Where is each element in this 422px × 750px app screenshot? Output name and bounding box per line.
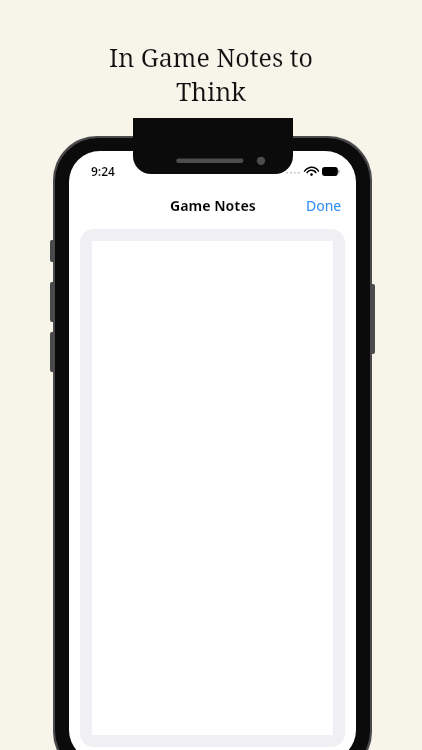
- staticText: Done: [306, 196, 342, 215]
- button[interactable]: [80, 229, 345, 747]
- button[interactable]: Done: [292, 188, 356, 223]
- staticText: Game Notes: [170, 196, 256, 215]
- staticText: In Game Notes to Think: [24, 40, 398, 108]
- staticText: 9:24: [91, 163, 115, 179]
